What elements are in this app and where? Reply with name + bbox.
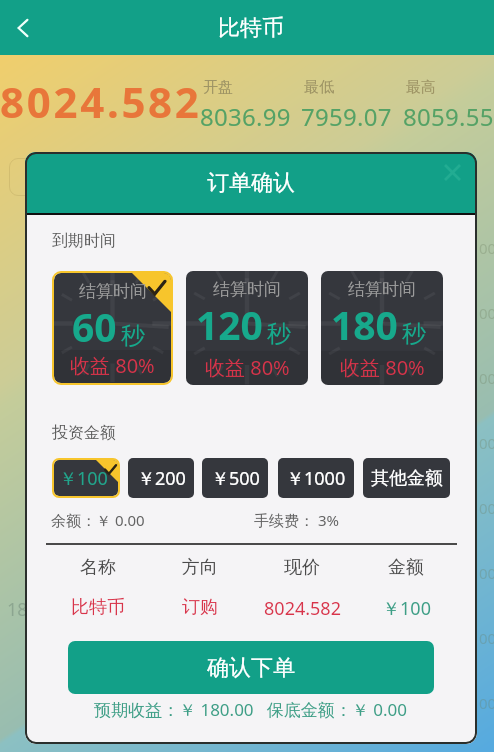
staticText: 订购: [182, 596, 218, 619]
staticText: 60: [72, 300, 117, 353]
staticText: ￥200: [137, 466, 186, 491]
staticText: 收益 80%: [70, 352, 155, 379]
staticText: 最低: [304, 78, 334, 97]
staticText: 8024.582: [264, 596, 341, 621]
staticText: 00: [479, 498, 494, 518]
staticText: 比特币: [218, 14, 284, 42]
staticText: 8024.582: [0, 73, 202, 130]
staticText: 现价: [284, 556, 320, 579]
button[interactable]: Back: [3, 8, 43, 48]
button[interactable]: ￥100: [54, 460, 118, 496]
button[interactable]: 结算时间: [321, 271, 443, 385]
staticText: 余额：￥ 0.00: [51, 510, 145, 530]
button[interactable]: 其他金额: [363, 458, 450, 498]
staticText: 订单确认: [207, 169, 295, 197]
staticText: 到期时间: [52, 231, 116, 251]
staticText: 投资金额: [52, 423, 116, 443]
staticText: 秒: [267, 319, 291, 349]
button[interactable]: ￥1000: [278, 458, 354, 498]
button[interactable]: 确认下单: [68, 641, 434, 694]
staticText: 结算时间: [79, 281, 147, 302]
button[interactable]: ￥200: [128, 458, 194, 498]
staticText: 180: [331, 298, 398, 351]
button[interactable]: ￥500: [202, 458, 268, 498]
staticText: 方向: [182, 556, 218, 579]
staticText: 00: [479, 693, 494, 713]
staticText: 00: [479, 303, 494, 323]
staticText: 名称: [80, 556, 116, 579]
staticText: 00: [479, 238, 494, 258]
staticText: ￥500: [211, 466, 260, 491]
staticText: 比特币: [71, 596, 125, 619]
button[interactable]: 结算时间: [186, 271, 308, 385]
staticText: 收益 80%: [205, 354, 290, 381]
staticText: 00: [479, 433, 494, 453]
staticText: 收益 80%: [340, 354, 425, 381]
staticText: 秒: [121, 321, 145, 351]
button[interactable]: 结算时间: [54, 273, 171, 383]
staticText: 00: [479, 563, 494, 583]
staticText: 最高: [406, 78, 436, 97]
staticText: 手续费： 3%: [254, 510, 339, 530]
staticText: 结算时间: [348, 279, 416, 300]
staticText: 8036.99: [200, 100, 291, 133]
staticText: ￥1000: [286, 466, 346, 491]
staticText: 7959.07: [301, 100, 392, 133]
staticText: 确认下单: [207, 654, 295, 682]
button[interactable]: Close: [437, 157, 467, 187]
staticText: 18: [7, 597, 28, 622]
staticText: 预期收益：￥ 180.00 保底金额：￥ 0.00: [94, 698, 408, 721]
staticText: 120: [196, 298, 263, 351]
staticText: 秒: [402, 319, 426, 349]
staticText: 8059.55: [403, 100, 494, 133]
staticText: ￥100: [382, 596, 431, 621]
staticText: ￥100: [59, 466, 108, 491]
staticText: 金额: [388, 556, 424, 579]
staticText: 00: [479, 628, 494, 648]
staticText: 开盘: [203, 78, 233, 97]
staticText: 其他金额: [371, 467, 443, 490]
staticText: 结算时间: [213, 279, 281, 300]
staticText: 00: [479, 368, 494, 388]
